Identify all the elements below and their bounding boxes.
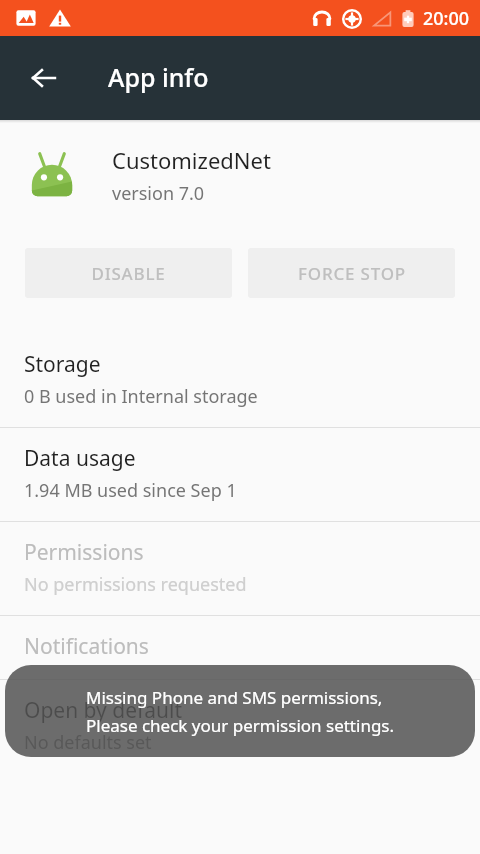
staticText: Storage [24,350,101,379]
staticText: Please check your permission settings. [86,714,395,737]
button[interactable]: Back [16,50,72,106]
staticText: Missing Phone and SMS permissions, [86,686,383,709]
staticText: No permissions requested [24,572,247,597]
staticText: Permissions [24,538,144,567]
button[interactable]: FORCE STOP [248,248,455,298]
staticText: 20:00 [423,6,470,31]
button[interactable]: Storage [0,334,480,427]
staticText: CustomizedNet [112,145,271,175]
button[interactable]: Permissions [0,522,480,615]
staticText: No defaults set [24,730,152,755]
button[interactable]: Data usage [0,428,480,521]
button[interactable]: Open by default [0,680,480,773]
button[interactable]: Notifications [0,616,480,679]
staticText: Open by default [24,696,183,725]
staticText: version 7.0 [112,181,205,206]
staticText: FORCE STOP [298,262,406,285]
staticText: Notifications [24,632,149,661]
staticText: 1.94 MB used since Sep 1 [24,478,237,503]
staticText: 0 B used in Internal storage [24,384,258,409]
staticText: Data usage [24,444,136,473]
button[interactable]: DISABLE [25,248,232,298]
staticText: App info [108,60,209,94]
staticText: DISABLE [91,262,166,285]
